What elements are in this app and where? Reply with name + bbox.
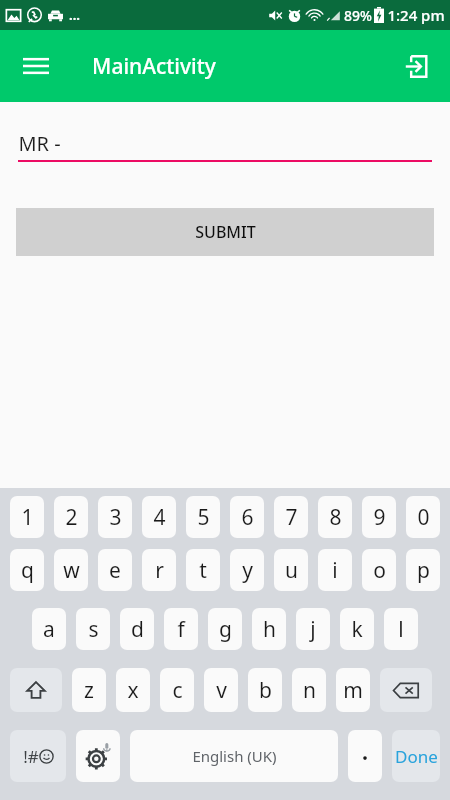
staticText: MainActivity	[92, 52, 216, 81]
staticText: 6	[241, 503, 254, 532]
staticText: z	[84, 676, 94, 705]
button[interactable]: w	[54, 549, 88, 591]
staticText: 3	[109, 503, 122, 532]
staticText: w	[63, 556, 80, 585]
button[interactable]: 8	[318, 496, 352, 538]
button[interactable]: p	[406, 549, 440, 591]
staticText: n	[303, 676, 316, 705]
staticText: 5	[197, 503, 210, 532]
button[interactable]: o	[362, 549, 396, 591]
staticText: m	[343, 676, 363, 705]
staticText: h	[263, 615, 276, 644]
button[interactable]: e	[98, 549, 132, 591]
button[interactable]: t	[186, 549, 220, 591]
staticText: s	[88, 615, 99, 644]
button[interactable]: y	[230, 549, 264, 591]
staticText: e	[109, 556, 121, 585]
button[interactable]: d	[120, 608, 154, 650]
staticText: 7	[285, 503, 298, 532]
staticText: v	[216, 676, 227, 705]
button[interactable]: j	[296, 608, 330, 650]
button[interactable]: Shift	[10, 668, 62, 712]
staticText: MR -	[18, 130, 61, 157]
staticText: 0	[417, 503, 430, 532]
button[interactable]: f	[164, 608, 198, 650]
button[interactable]: 0	[406, 496, 440, 538]
staticText: !#	[23, 745, 39, 768]
button[interactable]: k	[340, 608, 374, 650]
button[interactable]: 1	[10, 496, 44, 538]
staticText: r	[155, 556, 164, 585]
button[interactable]: Backspace	[380, 668, 432, 712]
button[interactable]: h	[252, 608, 286, 650]
button[interactable]: r	[142, 549, 176, 591]
button[interactable]: 2	[54, 496, 88, 538]
staticText: Done	[395, 745, 438, 768]
button[interactable]: SUBMIT	[16, 208, 434, 256]
staticText: b	[259, 676, 272, 705]
button[interactable]: Done	[392, 730, 440, 782]
button[interactable]: x	[116, 668, 150, 712]
button[interactable]: 6	[230, 496, 264, 538]
staticText: l	[398, 615, 404, 644]
button[interactable]: b	[248, 668, 282, 712]
staticText: 1	[21, 503, 34, 532]
staticText: u	[285, 556, 298, 585]
button[interactable]: v	[204, 668, 238, 712]
staticText: y	[242, 556, 253, 585]
button[interactable]: i	[318, 549, 352, 591]
staticText: f	[177, 615, 185, 644]
staticText: i	[332, 556, 338, 585]
button[interactable]: u	[274, 549, 308, 591]
staticText: 2	[65, 503, 78, 532]
button[interactable]: Logout	[392, 43, 438, 89]
staticText: x	[127, 676, 139, 705]
button[interactable]: Open navigation menu	[12, 42, 60, 90]
button[interactable]: s	[76, 608, 110, 650]
button[interactable]: Symbols and emoji	[10, 730, 66, 782]
button[interactable]: q	[10, 549, 44, 591]
button[interactable]: English (UK)	[130, 730, 338, 782]
button[interactable]: c	[160, 668, 194, 712]
staticText: k	[351, 615, 363, 644]
staticText: English (UK)	[192, 746, 277, 766]
staticText: 1:24 pm	[387, 5, 445, 25]
button[interactable]: n	[292, 668, 326, 712]
button[interactable]: 4	[142, 496, 176, 538]
button[interactable]: 5	[186, 496, 220, 538]
button[interactable]: 9	[362, 496, 396, 538]
button[interactable]: m	[336, 668, 370, 712]
button[interactable]: z	[72, 668, 106, 712]
staticText: p	[417, 556, 430, 585]
staticText: 4	[153, 503, 166, 532]
staticText: j	[310, 615, 316, 644]
staticText: ...	[69, 6, 80, 24]
staticText: 9	[373, 503, 386, 532]
button[interactable]: a	[32, 608, 66, 650]
button[interactable]: 7	[274, 496, 308, 538]
staticText: o	[373, 556, 386, 585]
button[interactable]: l	[384, 608, 418, 650]
staticText: g	[219, 615, 232, 644]
button[interactable]: 3	[98, 496, 132, 538]
staticText: d	[131, 615, 144, 644]
staticText: a	[43, 615, 55, 644]
staticText: 8	[329, 503, 342, 532]
button[interactable]	[348, 730, 382, 782]
button[interactable]: Keyboard settings	[76, 730, 120, 782]
staticText: t	[199, 556, 207, 585]
staticText: SUBMIT	[195, 221, 256, 243]
staticText: c	[172, 676, 183, 705]
button[interactable]: g	[208, 608, 242, 650]
staticText: q	[21, 556, 34, 585]
button[interactable]: MR -	[18, 130, 432, 162]
staticText: 89%	[344, 6, 372, 25]
